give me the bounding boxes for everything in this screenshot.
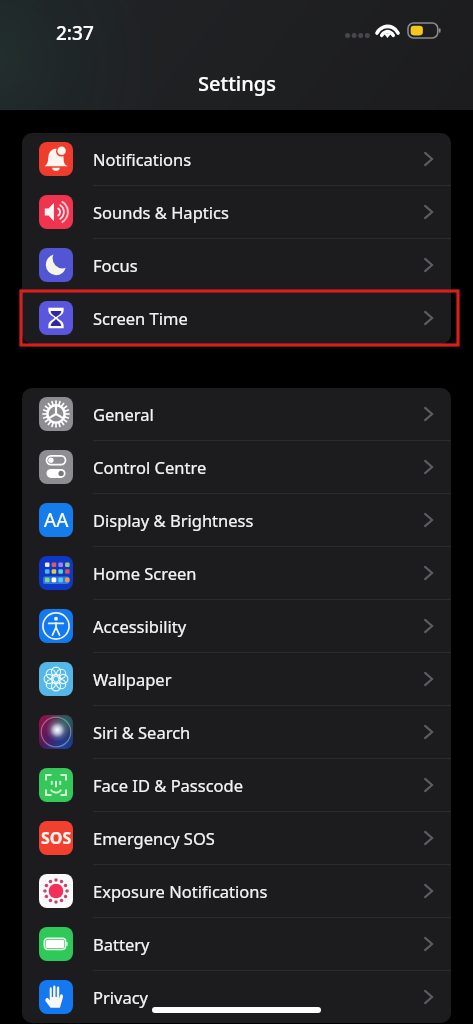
- button[interactable]: Privacy: [22, 971, 451, 1023]
- staticText: Siri & Search: [93, 721, 191, 743]
- staticText: Screen Time: [93, 307, 188, 329]
- button[interactable]: General: [22, 388, 451, 440]
- staticText: Exposure Notifications: [93, 880, 268, 902]
- staticText: Focus: [93, 254, 138, 276]
- staticText: Home Screen: [93, 562, 197, 584]
- staticText: 2:37: [56, 20, 94, 46]
- staticText: AA: [44, 507, 69, 533]
- button[interactable]: Home Screen: [22, 547, 451, 599]
- staticText: Notifications: [93, 148, 192, 170]
- staticText: Sounds & Haptics: [93, 201, 229, 223]
- staticText: Accessibility: [93, 615, 187, 637]
- staticText: Settings: [198, 70, 276, 97]
- button[interactable]: Face ID & Passcode: [22, 759, 451, 811]
- staticText: Display & Brightness: [93, 509, 254, 531]
- button[interactable]: Battery: [22, 918, 451, 970]
- button[interactable]: Wallpaper: [22, 653, 451, 705]
- button[interactable]: Notifications: [22, 133, 451, 185]
- button[interactable]: Accessibility: [22, 600, 451, 652]
- staticText: SOS: [41, 827, 72, 849]
- staticText: Battery: [93, 933, 150, 955]
- button[interactable]: Control Centre: [22, 441, 451, 493]
- staticText: General: [93, 403, 154, 425]
- staticText: Privacy: [93, 986, 149, 1008]
- button[interactable]: AA: [22, 494, 451, 546]
- button[interactable]: Screen Time: [22, 292, 451, 344]
- button[interactable]: Exposure Notifications: [22, 865, 451, 917]
- staticText: Face ID & Passcode: [93, 774, 244, 796]
- staticText: Wallpaper: [93, 668, 172, 690]
- button[interactable]: Sounds & Haptics: [22, 186, 451, 238]
- staticText: Control Centre: [93, 456, 207, 478]
- button[interactable]: Siri & Search: [22, 706, 451, 758]
- staticText: Emergency SOS: [93, 827, 215, 849]
- button[interactable]: Focus: [22, 239, 451, 291]
- button[interactable]: SOS: [22, 812, 451, 864]
